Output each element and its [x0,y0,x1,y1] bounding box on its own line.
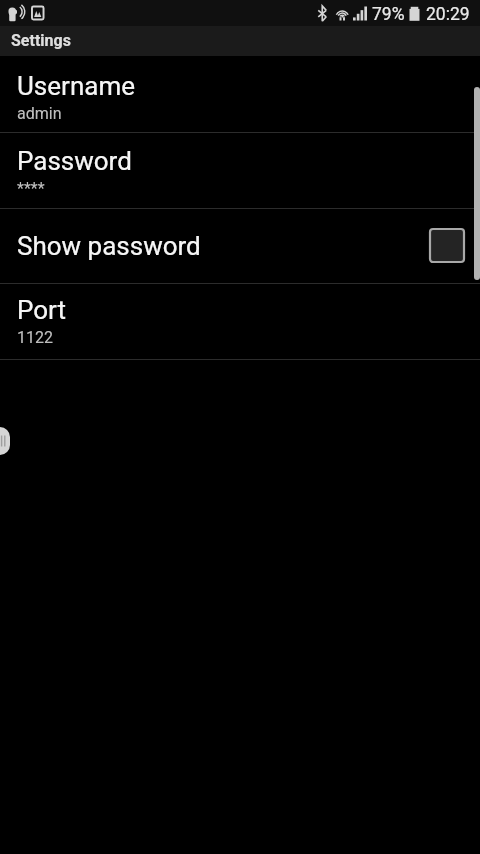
button[interactable]: Show password [0,209,480,283]
staticText: Port [17,295,67,325]
staticText: 1122 [17,328,53,347]
button[interactable]: Port [0,284,480,359]
button[interactable]: Password [0,133,480,208]
button[interactable]: Settings [0,26,480,56]
staticText: Settings [11,31,71,50]
button[interactable]: Scroll bar [474,87,480,280]
staticText: Show password [17,231,201,261]
staticText: Username [17,71,135,101]
staticText: Password [17,146,132,176]
button[interactable]: Username [0,56,480,132]
staticText: 79% [372,4,405,25]
staticText: admin [17,104,62,123]
button[interactable]: Show password, unchecked [429,228,465,264]
button[interactable]: Open navigation drawer [0,427,10,455]
staticText: 20:29 [426,4,470,25]
staticText: **** [17,179,45,198]
